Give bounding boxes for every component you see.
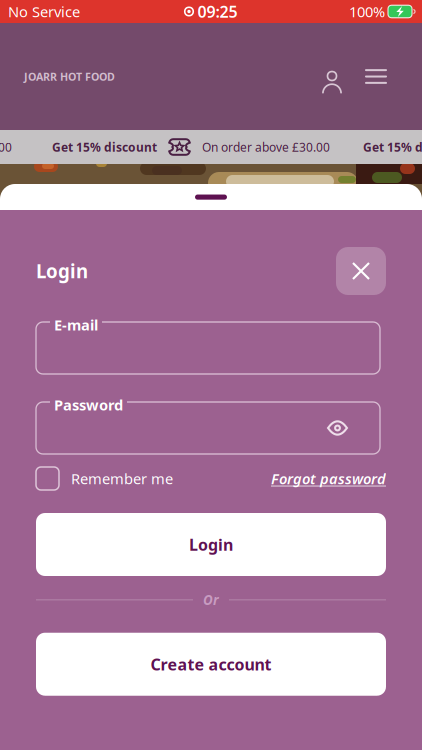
staticText: 100%	[349, 2, 385, 21]
staticText: £30.00	[0, 139, 12, 155]
staticText: Password	[54, 395, 123, 414]
button[interactable]: Login	[36, 513, 386, 576]
staticText: Or	[203, 591, 219, 609]
staticText: E-mail	[54, 315, 98, 334]
staticText: No Service	[8, 2, 80, 21]
button[interactable]: Menu	[359, 61, 393, 92]
staticText: Get 15% discount	[363, 139, 422, 155]
button[interactable]: Close	[336, 247, 386, 295]
staticText: 09:25	[197, 1, 237, 22]
staticText: Login	[189, 534, 233, 555]
staticText: Get 15% discount	[52, 139, 157, 155]
button[interactable]: Forgot password	[271, 469, 386, 488]
button[interactable]: Create account	[36, 633, 386, 696]
staticText: Create account	[150, 654, 271, 675]
staticText: JOARR HOT FOOD	[24, 69, 115, 84]
button[interactable]: Show password	[317, 410, 364, 445]
staticText: On order above £30.00	[202, 139, 330, 155]
button[interactable]: Account	[316, 60, 348, 92]
staticText: Remember me	[71, 469, 173, 488]
button[interactable]: Remember me	[36, 467, 173, 490]
staticText: Forgot password	[271, 469, 386, 488]
staticText: Login	[36, 259, 88, 283]
